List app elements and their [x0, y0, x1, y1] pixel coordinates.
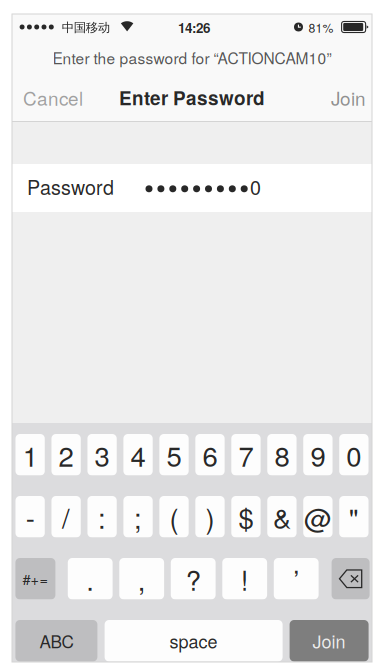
- button[interactable]: 6: [195, 434, 225, 475]
- button[interactable]: ABC: [15, 620, 97, 661]
- button[interactable]: 8: [267, 434, 297, 475]
- staticText: :: [98, 497, 106, 536]
- staticText: 4: [130, 435, 145, 474]
- staticText: !: [241, 559, 249, 598]
- button[interactable]: ’: [274, 558, 319, 599]
- button[interactable]: ?: [171, 558, 216, 599]
- staticText: 5: [166, 435, 181, 474]
- staticText: /: [62, 497, 70, 536]
- button[interactable]: Delete: [332, 558, 370, 599]
- button[interactable]: 7: [231, 434, 261, 475]
- button[interactable]: 1: [15, 434, 45, 475]
- staticText: space: [170, 628, 218, 654]
- button[interactable]: :: [87, 496, 117, 537]
- button[interactable]: Cancel: [23, 75, 85, 120]
- staticText: 14:26: [178, 18, 210, 37]
- staticText: &: [273, 497, 291, 536]
- staticText: Cancel: [23, 84, 83, 111]
- staticText: 中国移动: [62, 20, 110, 35]
- staticText: ;: [134, 497, 142, 536]
- staticText: -: [26, 497, 35, 536]
- button[interactable]: ): [195, 496, 225, 537]
- button[interactable]: Password: [12, 164, 372, 212]
- staticText: 6: [202, 435, 217, 474]
- staticText: Enter Password: [119, 84, 265, 111]
- staticText: 81%: [309, 19, 334, 36]
- button[interactable]: 5: [159, 434, 189, 475]
- button[interactable]: Symbols: [15, 558, 55, 599]
- staticText: 0: [346, 435, 361, 474]
- staticText: 7: [238, 435, 253, 474]
- staticText: 2: [59, 435, 74, 474]
- staticText: @: [304, 497, 332, 536]
- staticText: ?: [186, 559, 201, 598]
- staticText: ): [205, 497, 214, 536]
- staticText: ": [349, 497, 359, 536]
- staticText: 8: [274, 435, 289, 474]
- button[interactable]: 4: [123, 434, 153, 475]
- staticText: ,: [138, 559, 146, 598]
- staticText: .: [86, 559, 94, 598]
- button[interactable]: space: [105, 620, 283, 661]
- staticText: 1: [23, 435, 38, 474]
- button[interactable]: -: [15, 496, 45, 537]
- staticText: #+=: [22, 568, 48, 589]
- button[interactable]: $: [231, 496, 261, 537]
- staticText: ABC: [39, 628, 73, 653]
- button[interactable]: !: [222, 558, 267, 599]
- staticText: (: [169, 497, 178, 536]
- button[interactable]: @: [303, 496, 333, 537]
- button[interactable]: ": [339, 496, 368, 537]
- button[interactable]: /: [51, 496, 81, 537]
- staticText: 3: [95, 435, 110, 474]
- button[interactable]: Join: [290, 620, 369, 661]
- button[interactable]: 9: [303, 434, 333, 475]
- button[interactable]: ,: [119, 558, 164, 599]
- staticText: $: [238, 497, 253, 536]
- button[interactable]: &: [267, 496, 297, 537]
- staticText: Join: [313, 628, 346, 654]
- button[interactable]: 0: [339, 434, 368, 475]
- button[interactable]: ;: [123, 496, 153, 537]
- staticText: 9: [310, 435, 325, 474]
- button[interactable]: .: [68, 558, 113, 599]
- staticText: Enter the password for “ACTIONCAM10”: [52, 46, 331, 69]
- staticText: Join: [331, 84, 366, 111]
- button[interactable]: 2: [51, 434, 81, 475]
- button[interactable]: (: [159, 496, 189, 537]
- staticText: 0: [250, 172, 261, 201]
- staticText: ’: [293, 559, 299, 598]
- button[interactable]: Join: [324, 75, 366, 120]
- staticText: Password: [27, 172, 114, 201]
- button[interactable]: 3: [87, 434, 117, 475]
